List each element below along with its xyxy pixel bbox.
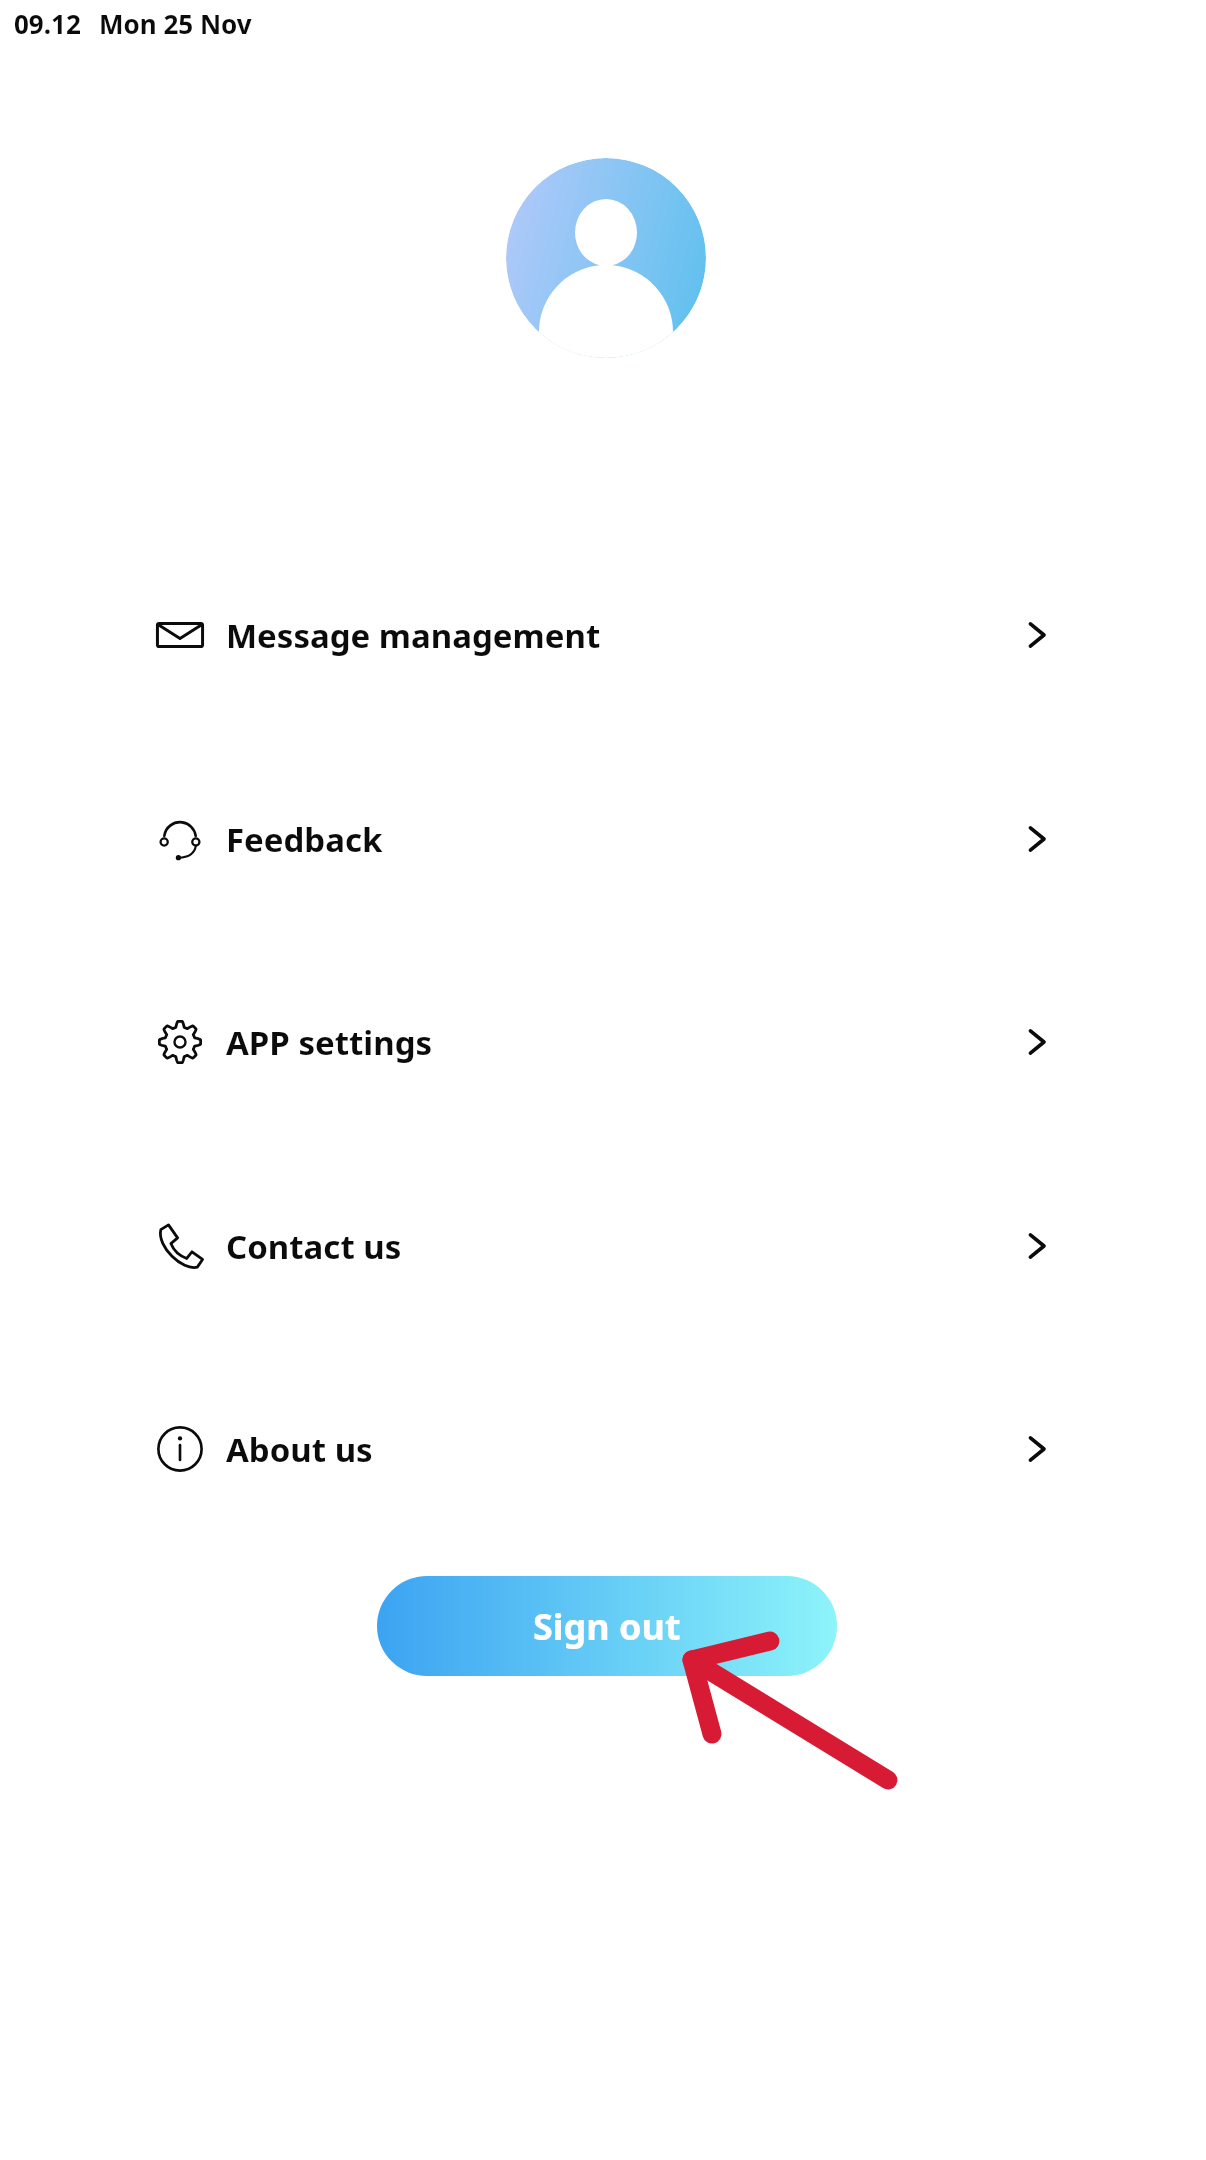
button[interactable]: Profile picture: [506, 158, 706, 358]
staticText: Contact us: [226, 1224, 402, 1269]
staticText: Message management: [226, 613, 601, 658]
staticText: APP settings: [226, 1020, 433, 1065]
staticText: Mon 25 Nov: [99, 6, 252, 41]
button[interactable]: About us: [0, 1397, 1206, 1501]
button[interactable]: Feedback: [0, 787, 1206, 891]
button[interactable]: APP settings: [0, 990, 1206, 1094]
button[interactable]: Sign out: [377, 1576, 837, 1676]
staticText: Sign out: [533, 1602, 681, 1651]
staticText: Feedback: [226, 817, 383, 862]
staticText: About us: [226, 1427, 373, 1472]
button[interactable]: Message management: [0, 583, 1206, 687]
button[interactable]: Contact us: [0, 1194, 1206, 1298]
staticText: 09.12: [14, 6, 81, 41]
